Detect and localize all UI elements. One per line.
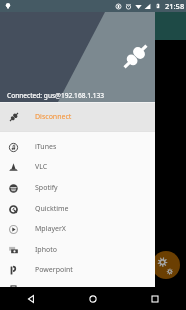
button[interactable]: Quicktime <box>0 199 155 219</box>
button[interactable]: Powerpoint <box>0 260 155 280</box>
staticText: Connected: gus@192.168.1.133 <box>7 91 105 100</box>
button[interactable]: Spotify <box>0 178 155 198</box>
button[interactable]: MplayerX <box>0 219 155 239</box>
button[interactable]: Disconnect <box>0 103 155 131</box>
staticText: iTunes <box>35 142 57 152</box>
button[interactable]: Keynote <box>0 281 155 301</box>
button[interactable]: Home <box>62 287 124 310</box>
staticText: Quicktime <box>35 204 69 214</box>
button[interactable]: Back <box>0 287 62 310</box>
button[interactable]: Iphoto <box>0 240 155 260</box>
staticText: Iphoto <box>35 245 58 255</box>
staticText: MplayerX <box>35 224 66 234</box>
button[interactable]: VLC <box>0 157 155 177</box>
button[interactable]: Settings <box>152 251 180 279</box>
button[interactable]: iTunes <box>0 137 155 157</box>
staticText: Powerpoint <box>35 265 73 275</box>
staticText: Disconnect <box>35 112 72 122</box>
staticText: 21:58 <box>165 1 185 11</box>
staticText: Spotify <box>35 183 58 193</box>
button[interactable]: Recents <box>124 287 186 310</box>
staticText: Keynote <box>35 286 62 296</box>
staticText: VLC <box>35 162 48 172</box>
